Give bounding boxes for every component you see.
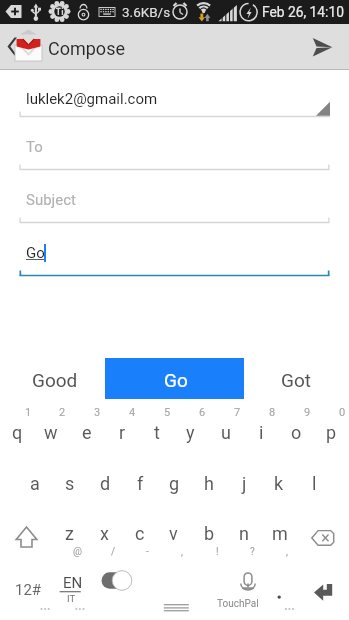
button[interactable] xyxy=(0,400,35,452)
button[interactable] xyxy=(314,400,349,452)
staticText: 3.6KB/s xyxy=(122,4,171,20)
staticText: g xyxy=(169,473,180,494)
staticText: 5 xyxy=(164,406,171,419)
staticText: k xyxy=(274,473,284,494)
button[interactable] xyxy=(52,502,87,554)
staticText: Subject xyxy=(26,191,76,209)
staticText: q xyxy=(12,422,23,443)
staticText: 9 xyxy=(304,406,311,419)
button[interactable]: Toggle keyboard mode xyxy=(100,560,148,620)
button[interactable] xyxy=(105,400,140,452)
button[interactable] xyxy=(244,358,349,399)
staticText: s xyxy=(65,473,75,494)
staticText: luklek2@gmail.com xyxy=(26,90,158,108)
staticText: TouchPal xyxy=(217,598,259,610)
button[interactable]: Navigate up xyxy=(0,24,349,69)
staticText: , xyxy=(181,546,183,558)
button[interactable] xyxy=(279,400,314,452)
staticText: 2 xyxy=(59,406,66,419)
staticText: w xyxy=(44,422,58,443)
staticText: i xyxy=(259,422,264,443)
button[interactable] xyxy=(105,358,244,399)
button[interactable] xyxy=(157,452,192,502)
staticText: r xyxy=(119,422,126,443)
staticText: 3 xyxy=(94,406,101,419)
staticText: ! xyxy=(216,546,219,558)
button[interactable] xyxy=(244,400,279,452)
staticText: Feb 26, 14:10 xyxy=(262,4,344,20)
staticText: m xyxy=(272,523,288,544)
staticText: y xyxy=(186,422,195,443)
button[interactable]: Enter xyxy=(306,560,349,620)
staticText: l xyxy=(312,473,317,494)
button[interactable]: Space xyxy=(148,560,214,620)
button[interactable]: Backspace xyxy=(297,502,349,554)
button[interactable] xyxy=(262,452,297,502)
staticText: 12# xyxy=(15,581,42,599)
staticText: b xyxy=(204,523,215,544)
button[interactable]: Send xyxy=(303,24,349,69)
staticText: f xyxy=(137,473,144,494)
staticText: ? xyxy=(250,546,255,558)
staticText: a xyxy=(30,473,40,494)
staticText: Compose xyxy=(48,38,125,59)
button[interactable]: Symbols xyxy=(0,560,52,620)
button[interactable] xyxy=(227,452,262,502)
staticText: , xyxy=(286,546,288,558)
button[interactable] xyxy=(209,400,244,452)
staticText: c xyxy=(135,523,145,544)
staticText: z xyxy=(65,523,74,544)
other: Navigate up xyxy=(0,24,50,69)
staticText: h xyxy=(204,473,214,494)
staticText: x xyxy=(100,523,109,544)
staticText: p xyxy=(326,422,337,443)
button[interactable] xyxy=(122,502,157,554)
button[interactable] xyxy=(175,400,210,452)
staticText: t xyxy=(154,422,160,443)
staticText: / xyxy=(111,546,116,558)
staticText: Go xyxy=(164,369,188,391)
staticText: 8 xyxy=(269,406,276,419)
button[interactable] xyxy=(192,502,227,554)
button[interactable]: Language xyxy=(52,560,100,620)
staticText: To xyxy=(26,138,43,156)
staticText: @ xyxy=(73,546,82,558)
staticText: d xyxy=(100,473,111,494)
button[interactable]: Voice input xyxy=(214,560,272,620)
staticText: 7 xyxy=(234,406,241,419)
staticText: - xyxy=(146,546,149,558)
button[interactable] xyxy=(87,452,122,502)
button[interactable]: Shift xyxy=(0,502,52,554)
staticText: o xyxy=(291,422,302,443)
staticText: EN xyxy=(63,574,83,592)
staticText: 6 xyxy=(199,406,206,419)
staticText: IT xyxy=(67,593,76,604)
button[interactable] xyxy=(122,452,157,502)
staticText: Go xyxy=(26,244,45,262)
button[interactable]: Period xyxy=(272,560,306,620)
button[interactable] xyxy=(70,400,105,452)
button[interactable] xyxy=(35,400,70,452)
button[interactable] xyxy=(140,400,175,452)
staticText: j xyxy=(242,473,247,494)
staticText: n xyxy=(239,523,249,544)
staticText: 0 xyxy=(339,406,346,419)
staticText: e xyxy=(82,422,92,443)
staticText: v xyxy=(169,523,178,544)
button[interactable] xyxy=(17,452,52,502)
button[interactable] xyxy=(227,502,262,554)
staticText: 1 xyxy=(25,406,32,419)
button[interactable] xyxy=(52,452,87,502)
staticText: Good xyxy=(32,369,78,391)
button[interactable] xyxy=(0,358,105,399)
button[interactable] xyxy=(157,502,192,554)
staticText: u xyxy=(221,422,231,443)
staticText: 4 xyxy=(129,406,136,419)
staticText: Got xyxy=(281,369,311,391)
button[interactable] xyxy=(262,502,297,554)
button[interactable] xyxy=(192,452,227,502)
button[interactable] xyxy=(87,502,122,554)
button[interactable] xyxy=(297,452,332,502)
